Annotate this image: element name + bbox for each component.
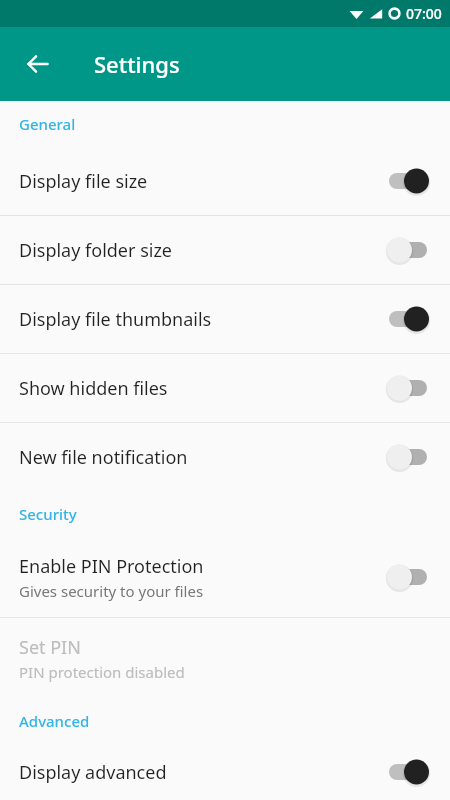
button[interactable]: On: [382, 164, 434, 198]
button[interactable]: Back: [14, 40, 62, 88]
button[interactable]: Display file size: [0, 147, 450, 215]
staticText: Security: [19, 504, 77, 524]
button[interactable]: New file notification: [0, 423, 450, 491]
staticText: Enable PIN Protection: [19, 554, 204, 579]
staticText: General: [19, 114, 76, 134]
button[interactable]: On: [382, 755, 434, 789]
staticText: Display advanced: [19, 760, 167, 785]
button[interactable]: Off: [382, 233, 434, 267]
staticText: PIN protection disabled: [19, 662, 185, 682]
button[interactable]: Display folder size: [0, 216, 450, 284]
button[interactable]: Off: [382, 371, 434, 405]
button[interactable]: Display advanced: [0, 744, 450, 800]
staticText: Set PIN: [19, 635, 81, 660]
button[interactable]: On: [382, 302, 434, 336]
button[interactable]: Enable PIN Protection: [0, 537, 450, 617]
staticText: Display folder size: [19, 238, 173, 263]
staticText: Display file size: [19, 169, 148, 194]
button: Set PIN: [0, 618, 450, 698]
staticText: Advanced: [19, 711, 90, 731]
staticText: Gives security to your files: [19, 581, 204, 601]
staticText: Display file thumbnails: [19, 307, 212, 332]
button[interactable]: Show hidden files: [0, 354, 450, 422]
button[interactable]: Off: [382, 440, 434, 474]
button[interactable]: Off: [382, 560, 434, 594]
button[interactable]: Display file thumbnails: [0, 285, 450, 353]
staticText: 07:00: [406, 4, 442, 23]
staticText: New file notification: [19, 445, 188, 470]
staticText: Show hidden files: [19, 376, 168, 401]
staticText: Settings: [94, 49, 180, 79]
